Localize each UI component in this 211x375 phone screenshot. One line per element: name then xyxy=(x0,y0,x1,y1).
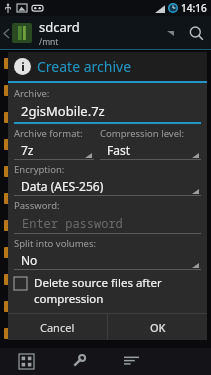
staticText: Password: xyxy=(14,199,60,212)
button[interactable]: Grid view xyxy=(0,348,52,375)
button[interactable]: Cancel xyxy=(8,314,107,340)
staticText: Archive format: xyxy=(14,127,83,140)
staticText: 14:16 xyxy=(181,1,207,15)
button[interactable]: No xyxy=(14,250,201,270)
button[interactable]: Fast xyxy=(100,140,201,160)
staticText: Data (AES-256) xyxy=(21,178,104,194)
button[interactable]: Up xyxy=(0,16,12,50)
button[interactable]: Tools xyxy=(52,348,105,375)
button[interactable]: Enter password xyxy=(14,212,201,233)
button[interactable]: 7z xyxy=(14,140,94,160)
staticText: Compression level: xyxy=(100,127,185,140)
staticText: 7z xyxy=(21,142,34,158)
staticText: Create archive xyxy=(37,57,132,76)
button[interactable]: Data (AES-256) xyxy=(14,176,201,196)
staticText: /mnt xyxy=(39,36,59,48)
staticText: OK xyxy=(150,320,166,335)
staticText: Encryption: xyxy=(14,163,65,176)
staticText: Fast xyxy=(107,142,131,158)
button[interactable]: Search xyxy=(181,16,211,50)
staticText: sdcard xyxy=(39,18,80,36)
staticText: Archive: xyxy=(14,87,50,100)
button[interactable]: Sort xyxy=(105,348,158,375)
button[interactable]: Delete source files after xyxy=(14,275,201,307)
staticText: Delete source files after xyxy=(34,275,162,291)
staticText: compression xyxy=(34,291,104,307)
button[interactable]: Overflow xyxy=(159,16,181,50)
staticText: Enter password xyxy=(22,215,123,231)
staticText: 2gisMobile.7z xyxy=(21,102,105,120)
staticText: Split into volumes: xyxy=(14,237,97,250)
staticText: No xyxy=(21,252,38,268)
staticText: Cancel xyxy=(40,320,75,335)
button[interactable]: 2gisMobile.7z xyxy=(14,100,201,122)
button[interactable]: OK xyxy=(108,314,207,340)
